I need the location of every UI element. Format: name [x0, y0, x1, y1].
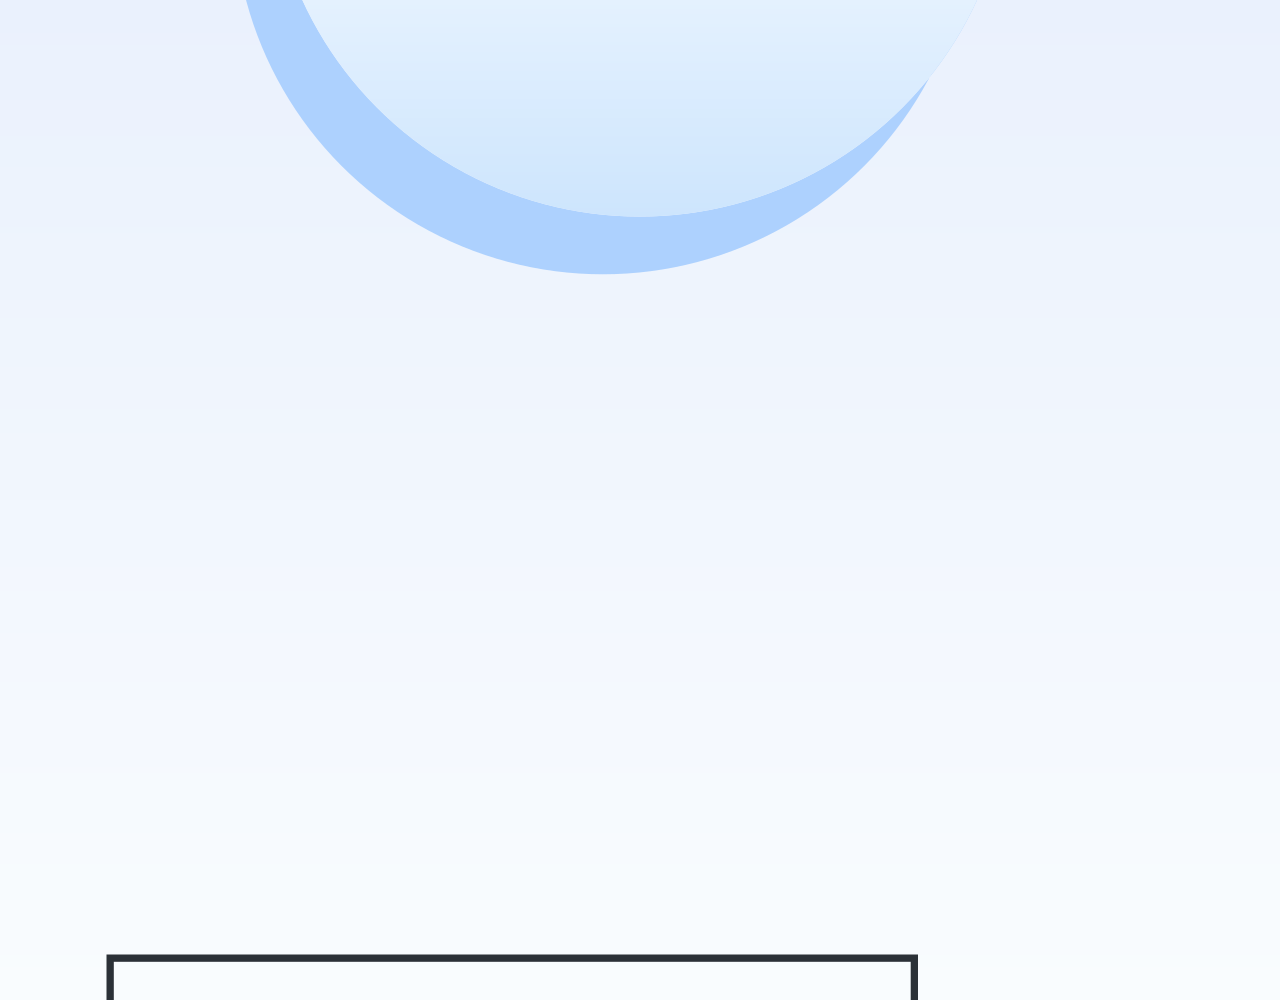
button[interactable]: Continue [0, 0, 1280, 1000]
